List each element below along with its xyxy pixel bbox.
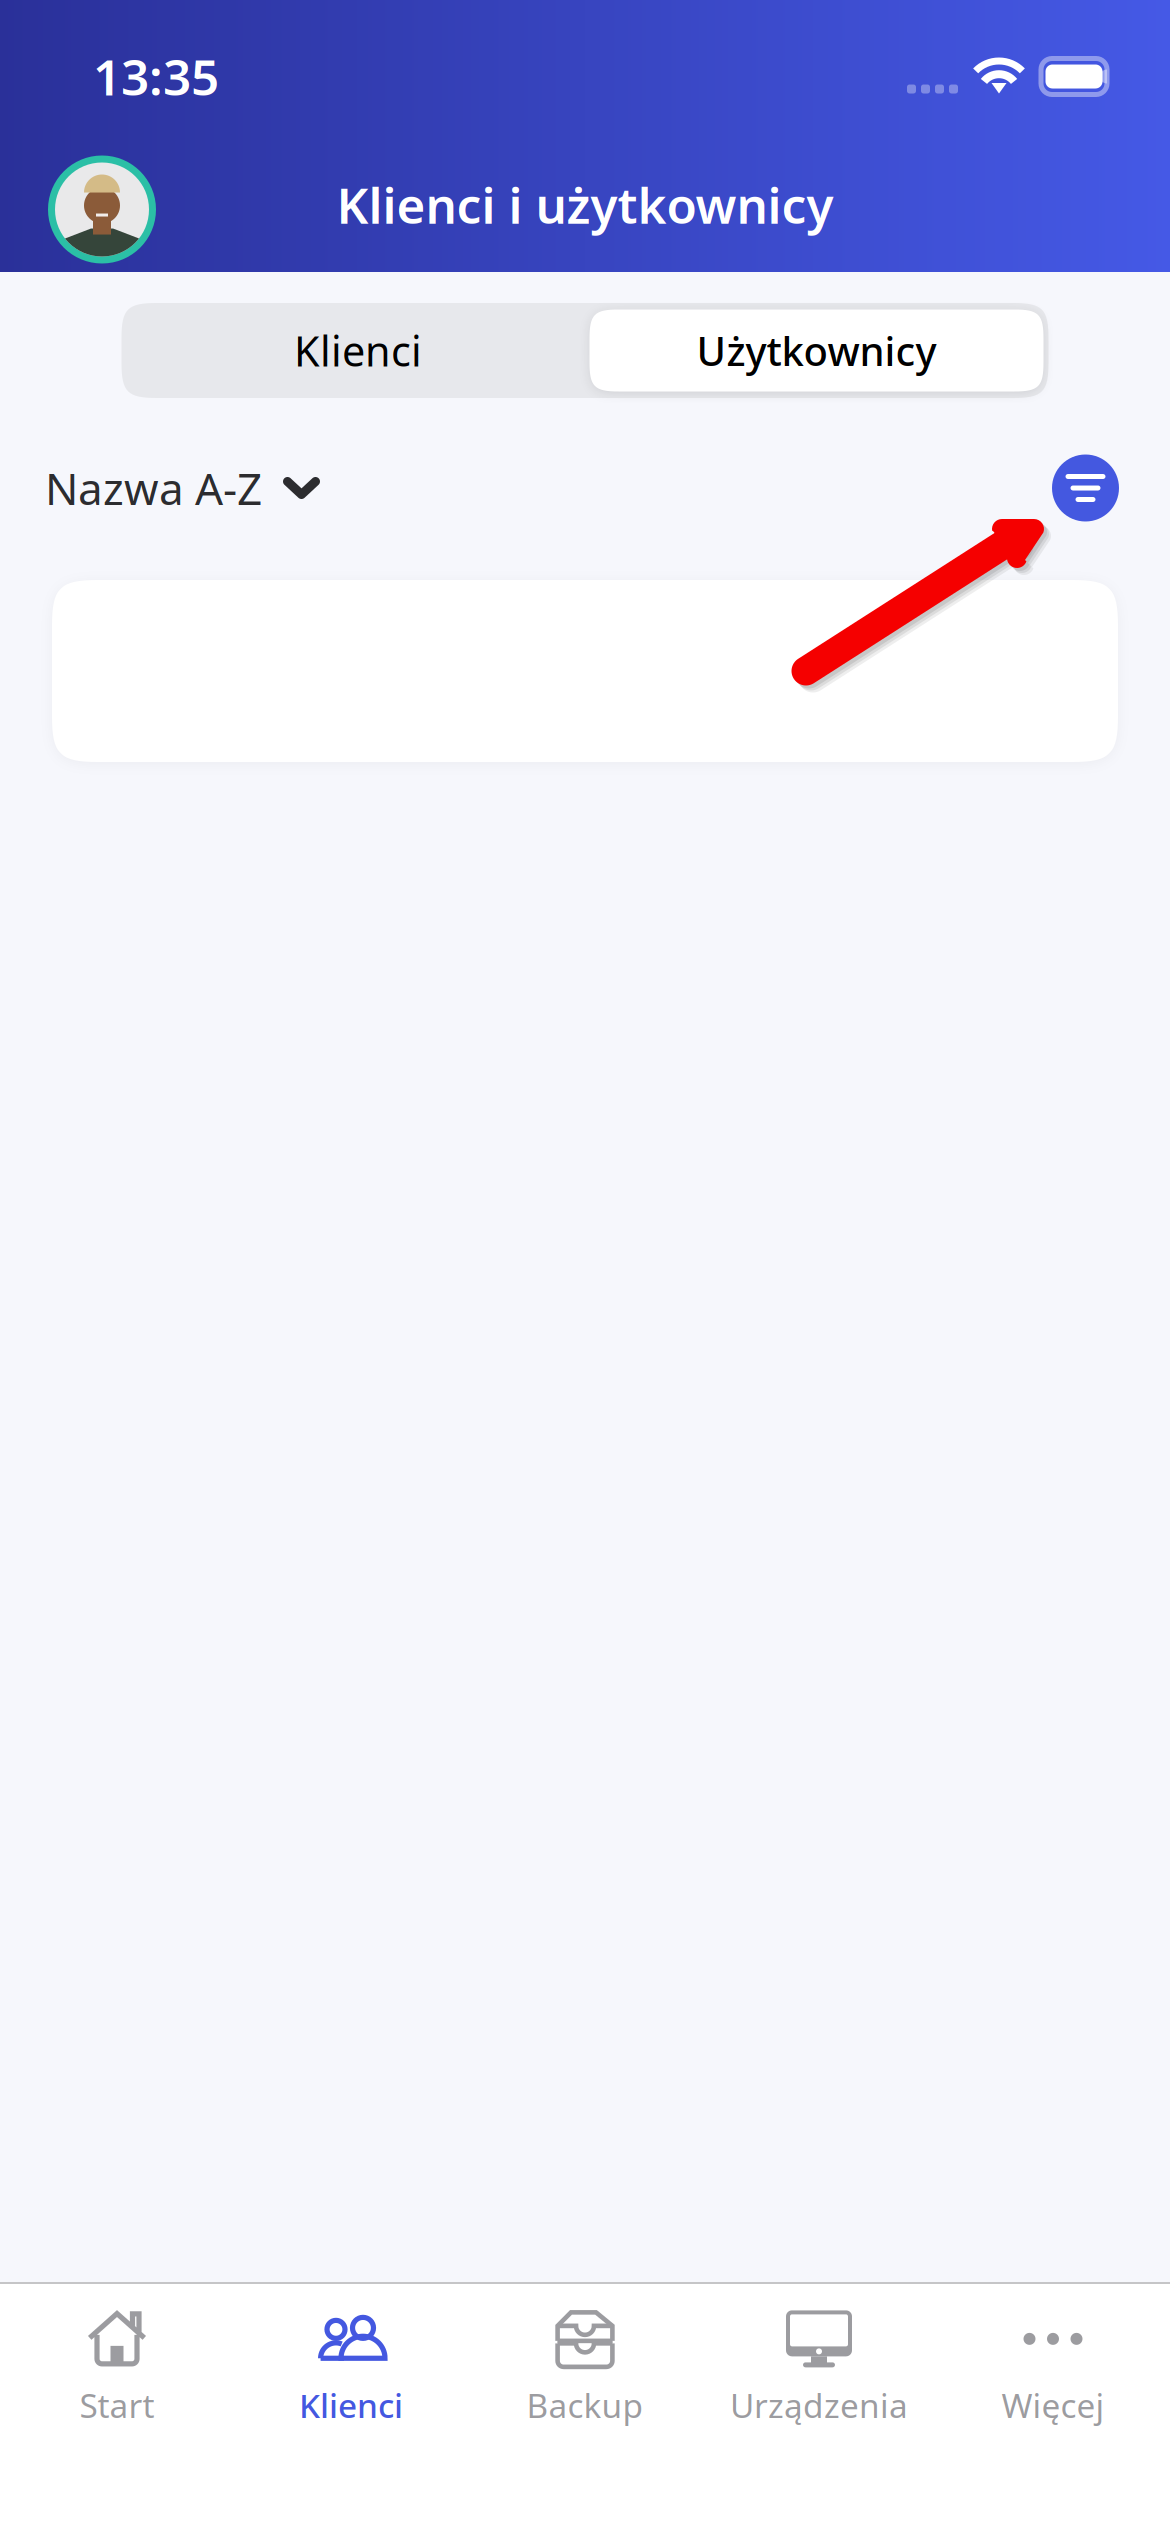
- button[interactable]: Nazwa A-Z: [45, 459, 320, 517]
- staticText: Klienci: [294, 323, 422, 378]
- button[interactable]: Klienci: [234, 2284, 468, 2424]
- button[interactable]: Więcej: [936, 2284, 1170, 2424]
- button[interactable]: Filtruj: [1052, 454, 1119, 521]
- staticText: 13:35: [93, 43, 219, 109]
- staticText: Klienci i użytkownicy: [336, 172, 833, 237]
- button[interactable]: Klienci: [126, 303, 589, 398]
- button[interactable]: Użytkownicy: [589, 309, 1043, 391]
- button[interactable]: Backup: [468, 2284, 702, 2424]
- staticText: Nazwa A-Z: [45, 459, 262, 517]
- button[interactable]: Profil: [48, 155, 156, 263]
- staticText: Użytkownicy: [696, 324, 936, 377]
- staticText: Więcej: [1001, 2383, 1104, 2427]
- staticText: Urządzenia: [730, 2383, 908, 2427]
- button[interactable]: Start: [0, 2284, 234, 2424]
- staticText: Start: [79, 2383, 154, 2427]
- button[interactable]: Max: [52, 580, 1118, 762]
- staticText: Klienci: [299, 2383, 403, 2427]
- button[interactable]: Urządzenia: [702, 2284, 936, 2424]
- staticText: Backup: [526, 2383, 643, 2427]
